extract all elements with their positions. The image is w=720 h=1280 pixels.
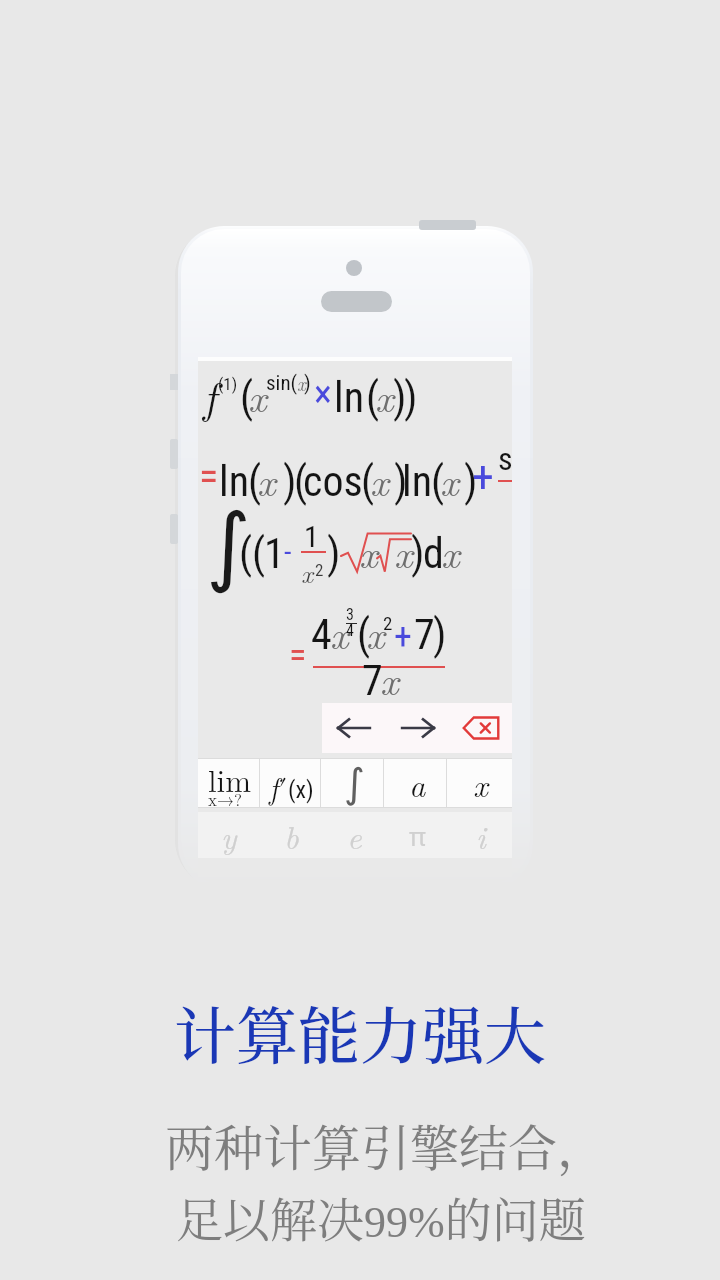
staticText: i xyxy=(476,813,486,858)
button[interactable]: lim xyxy=(198,758,260,808)
staticText: f xyxy=(269,765,279,807)
staticText: x xyxy=(330,604,349,661)
staticText: x xyxy=(473,761,488,806)
staticText: cos xyxy=(303,457,363,506)
staticText: a xyxy=(409,761,426,806)
staticText: ∫ xyxy=(206,495,251,595)
staticText: b xyxy=(284,813,299,858)
staticText: 7 xyxy=(362,656,383,705)
staticText: x xyxy=(301,554,314,591)
staticText: ( xyxy=(357,610,371,659)
staticText: x xyxy=(359,523,378,580)
staticText: + xyxy=(472,451,494,503)
staticText: 计算能力强大 xyxy=(174,988,547,1077)
staticText: x→? xyxy=(208,787,242,811)
staticText: x xyxy=(257,451,276,508)
staticText: lim xyxy=(208,757,252,801)
button[interactable]: f xyxy=(260,758,323,808)
staticText: x xyxy=(297,370,306,397)
staticText: s xyxy=(498,440,513,478)
staticText: - xyxy=(284,534,292,569)
staticText: ln xyxy=(334,373,364,422)
staticText: ( xyxy=(361,457,375,506)
staticText: x xyxy=(394,523,413,580)
staticText: ) xyxy=(411,529,425,578)
staticText: 4 xyxy=(311,610,332,659)
staticText: π xyxy=(409,818,426,853)
staticText: × xyxy=(314,372,332,417)
staticText: ( xyxy=(252,529,266,578)
staticText: ( xyxy=(431,457,445,506)
staticText: (x) xyxy=(288,776,314,804)
staticText: ) xyxy=(433,610,447,659)
staticText: ) xyxy=(327,529,341,578)
staticText: 2 xyxy=(383,612,393,634)
staticText: 7 xyxy=(414,610,435,659)
staticText: ( xyxy=(239,529,253,578)
button[interactable]: y xyxy=(198,812,260,858)
staticText: x xyxy=(370,451,389,508)
staticText: ln xyxy=(219,457,249,506)
staticText: 两种计算引擎结合， xyxy=(165,1110,607,1180)
staticText: ) xyxy=(393,373,407,422)
button[interactable]: b xyxy=(260,812,323,858)
button[interactable]: Move cursor right xyxy=(386,703,449,753)
staticText: x xyxy=(366,604,385,661)
staticText: ) xyxy=(404,373,418,422)
staticText: ) xyxy=(283,457,297,506)
staticText: 3 xyxy=(346,605,354,624)
staticText: x xyxy=(440,451,459,508)
staticText: y xyxy=(221,813,237,858)
staticText: ′ xyxy=(279,776,288,802)
staticText: e xyxy=(347,813,362,858)
staticText: + xyxy=(394,616,412,658)
button[interactable]: x xyxy=(449,758,512,808)
staticText: 足以解决99%的问题 xyxy=(176,1183,586,1251)
staticText: ( xyxy=(366,373,380,422)
staticText: d xyxy=(423,529,444,578)
button[interactable]: i xyxy=(449,812,512,858)
button[interactable]: ∫ xyxy=(323,758,386,808)
staticText: = xyxy=(289,634,307,676)
staticText: = xyxy=(199,453,219,500)
staticText: 2 xyxy=(315,560,324,580)
staticText: 1 xyxy=(264,529,285,578)
button[interactable]: Move cursor left xyxy=(322,703,386,753)
staticText: ) xyxy=(304,371,311,396)
staticText: x xyxy=(375,367,394,424)
staticText: ln xyxy=(402,457,432,506)
staticText: sin( xyxy=(266,371,298,396)
staticText: f xyxy=(203,363,217,425)
staticText: ( xyxy=(248,457,262,506)
button[interactable]: Backspace xyxy=(449,703,512,753)
staticText: ( xyxy=(240,373,254,422)
staticText: x xyxy=(441,523,460,580)
button[interactable]: π xyxy=(386,812,449,858)
staticText: ) xyxy=(464,457,478,506)
button[interactable]: e xyxy=(323,812,386,858)
staticText: 1 xyxy=(304,519,319,554)
staticText: 4 xyxy=(346,621,354,640)
staticText: x xyxy=(380,650,399,707)
staticText: ( xyxy=(294,457,308,506)
staticText: (1) xyxy=(218,374,238,394)
staticText: x xyxy=(248,367,267,424)
staticText: ∫ xyxy=(344,760,365,807)
button[interactable]: a xyxy=(386,758,449,808)
staticText: ) xyxy=(394,457,408,506)
